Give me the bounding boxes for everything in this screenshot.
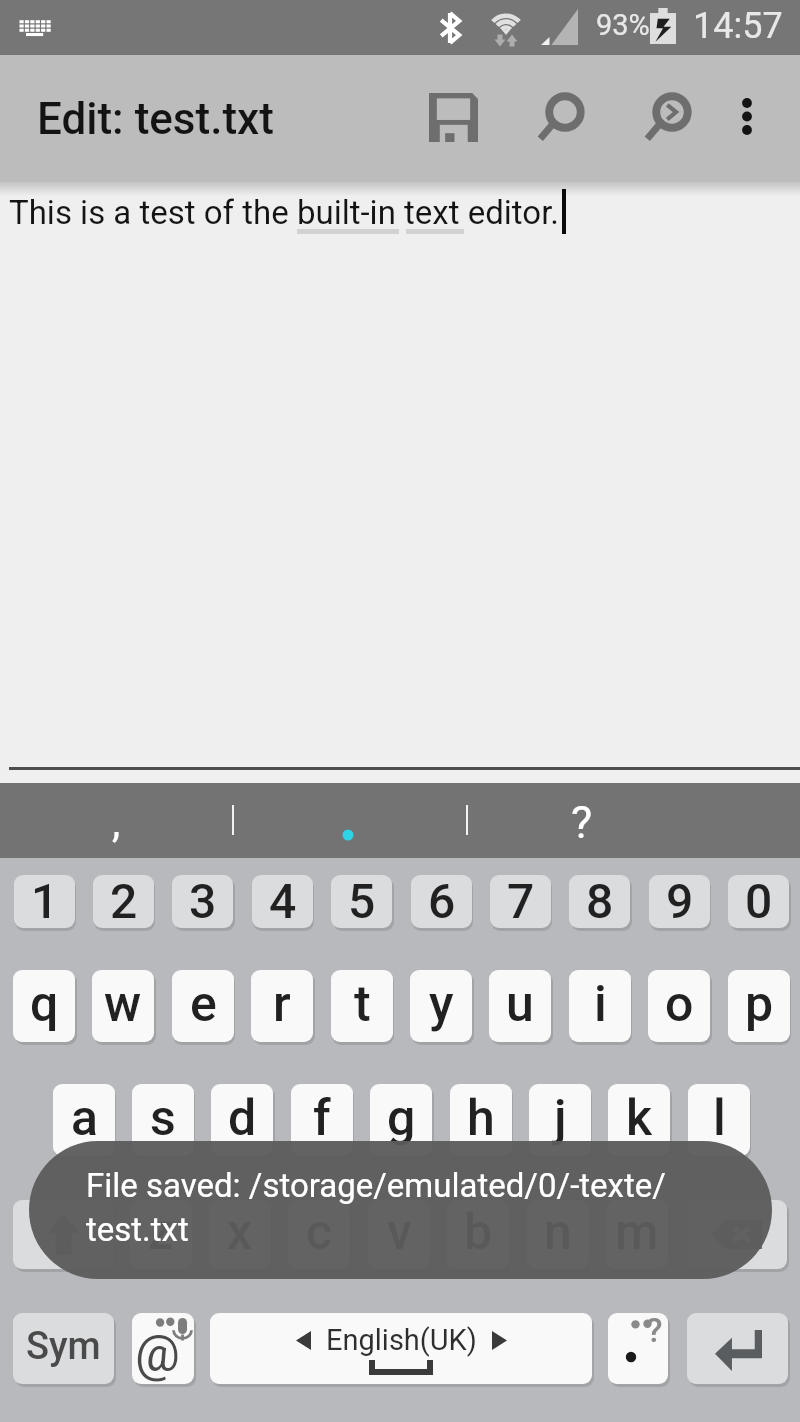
button[interactable]: Sym [13, 1313, 114, 1384]
button[interactable]: f [291, 1084, 353, 1156]
staticText: z [148, 1203, 174, 1262]
staticText: @ [135, 1325, 180, 1384]
button[interactable]: o [648, 970, 710, 1042]
button[interactable]: h [450, 1084, 512, 1156]
staticText: p [745, 975, 774, 1034]
button[interactable]: Backspace [686, 1200, 787, 1269]
staticText: 0 [745, 875, 773, 926]
staticText: t [354, 975, 371, 1034]
button[interactable]: i [569, 970, 631, 1042]
staticText: ? [646, 1313, 663, 1350]
staticText: Sym [26, 1324, 101, 1369]
staticText: h [467, 1089, 495, 1148]
staticText: y [429, 975, 454, 1034]
button[interactable]: Shift [13, 1200, 114, 1269]
staticText: w [104, 975, 142, 1034]
button[interactable]: k [608, 1084, 670, 1156]
staticText: d [228, 1089, 257, 1148]
button[interactable]: 3 [172, 875, 233, 928]
button[interactable]: 1 [14, 875, 75, 928]
staticText: 14:57 [693, 5, 783, 47]
button[interactable]: c [288, 1200, 350, 1269]
button[interactable]: a [53, 1084, 115, 1156]
button[interactable]: 6 [411, 875, 472, 928]
button[interactable]: m [606, 1200, 668, 1269]
button[interactable]: 0 [728, 875, 789, 928]
staticText: k [626, 1089, 653, 1148]
staticText: 2 [110, 875, 138, 926]
button[interactable]: u [489, 970, 551, 1042]
staticText: 6 [428, 875, 456, 926]
staticText: n [544, 1203, 572, 1262]
staticText: 9 [666, 875, 694, 926]
staticText: m [615, 1203, 659, 1262]
button[interactable]: Voice input [132, 1313, 194, 1384]
staticText: x [227, 1203, 253, 1262]
button[interactable]: Space, English (UK) [210, 1313, 592, 1384]
button[interactable]: Find next [628, 78, 708, 156]
staticText: File saved: /storage/emulated/0/-texte/ [86, 1166, 666, 1205]
button[interactable]: y [410, 970, 472, 1042]
staticText: g [387, 1089, 416, 1148]
staticText: 8 [586, 875, 614, 926]
staticText: q [30, 975, 59, 1034]
button[interactable]: g [370, 1084, 432, 1156]
button[interactable]: More options [717, 78, 777, 156]
staticText: , [112, 798, 121, 847]
button[interactable]: z [130, 1200, 192, 1269]
button[interactable]: Save [413, 78, 493, 156]
button[interactable]: j [529, 1084, 591, 1156]
button[interactable]: Enter [687, 1313, 788, 1384]
button[interactable]: l [688, 1084, 750, 1156]
button[interactable]: 5 [331, 875, 392, 928]
staticText: e [190, 975, 217, 1034]
staticText: 3 [189, 875, 217, 926]
staticText: a [71, 1089, 98, 1148]
staticText: c [306, 1203, 333, 1262]
staticText: r [273, 975, 291, 1034]
staticText: This is a test of the built-in text edit… [9, 193, 560, 232]
button[interactable]: 4 [252, 875, 313, 928]
staticText: English(UK) [326, 1323, 477, 1357]
button[interactable]: 7 [490, 875, 551, 928]
staticText: s [150, 1089, 176, 1148]
staticText: u [506, 975, 534, 1034]
staticText: Edit: test.txt [37, 93, 274, 145]
button[interactable]: Search [521, 78, 601, 156]
staticText: ? [571, 796, 593, 849]
button[interactable]: t [331, 970, 393, 1042]
staticText: b [464, 1203, 493, 1262]
staticText: v [387, 1203, 412, 1262]
staticText: 7 [507, 875, 535, 926]
staticText: i [594, 975, 607, 1034]
button[interactable]: e [172, 970, 234, 1042]
button[interactable]: 2 [93, 875, 154, 928]
staticText: 4 [269, 875, 297, 926]
button[interactable]: r [251, 970, 313, 1042]
staticText: test.txt [86, 1210, 189, 1249]
staticText: 93% [596, 8, 650, 42]
staticText: l [713, 1089, 726, 1148]
staticText: o [665, 975, 694, 1034]
button[interactable]: s [132, 1084, 194, 1156]
staticText: 1 [31, 875, 59, 926]
staticText: 5 [348, 875, 376, 926]
button[interactable]: 9 [649, 875, 710, 928]
button[interactable]: p [728, 970, 790, 1042]
button[interactable]: q [13, 970, 75, 1042]
button[interactable]: d [211, 1084, 273, 1156]
staticText: j [554, 1089, 567, 1148]
staticText: f [313, 1089, 331, 1148]
button[interactable]: Period [608, 1313, 668, 1384]
button[interactable]: w [92, 970, 154, 1042]
button[interactable]: 8 [569, 875, 630, 928]
